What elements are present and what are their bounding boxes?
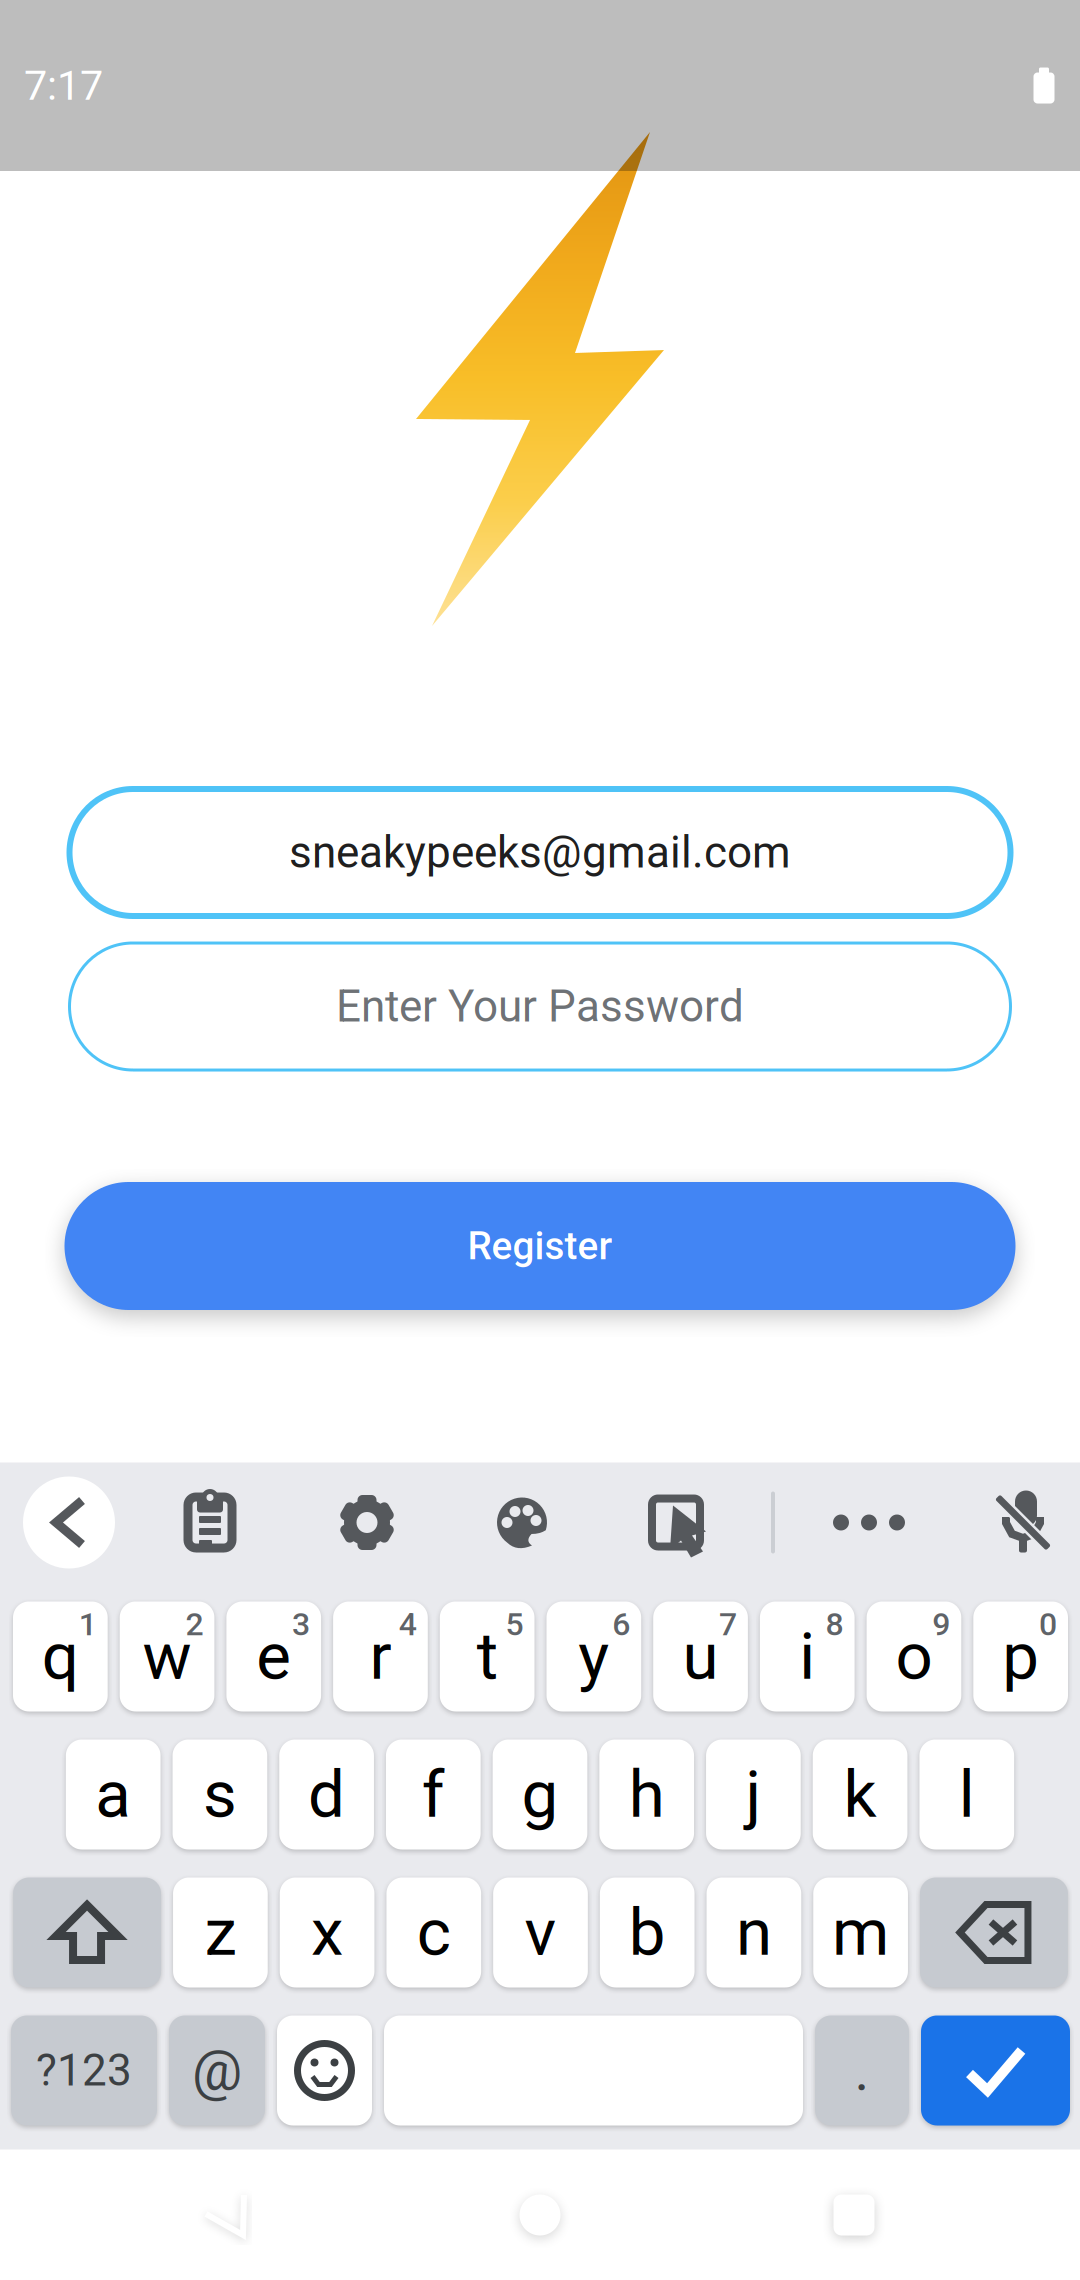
button[interactable]: k — [813, 1739, 907, 1849]
button[interactable]: Theme — [494, 1494, 550, 1550]
staticText: w — [142, 1618, 191, 1695]
button[interactable]: q — [13, 1601, 108, 1711]
button[interactable]: p — [973, 1601, 1068, 1711]
staticText: o — [895, 1618, 932, 1695]
staticText: 3 — [292, 1605, 310, 1643]
button[interactable]: Enter Your Password — [69, 943, 1010, 1070]
button[interactable]: g — [493, 1739, 587, 1849]
button[interactable]: j — [706, 1739, 801, 1849]
button[interactable]: m — [813, 1877, 908, 1987]
button[interactable]: c — [386, 1877, 481, 1987]
button[interactable]: r — [333, 1601, 428, 1711]
button[interactable]: f — [386, 1739, 481, 1849]
staticText: 6 — [612, 1605, 630, 1643]
staticText: Register — [467, 1223, 612, 1269]
button[interactable]: Voice input off — [992, 1491, 1054, 1553]
button[interactable]: w — [120, 1601, 214, 1711]
staticText: l — [959, 1756, 975, 1833]
button[interactable]: o — [867, 1601, 961, 1711]
button[interactable]: l — [919, 1739, 1014, 1849]
button[interactable]: Stickers — [645, 1491, 707, 1553]
staticText: d — [308, 1756, 345, 1833]
staticText: g — [521, 1756, 558, 1833]
button[interactable]: sneakypeeks@gmail.com — [69, 789, 1010, 916]
button[interactable]: b — [600, 1877, 694, 1987]
staticText: p — [1002, 1618, 1039, 1695]
staticText: y — [578, 1618, 609, 1695]
button[interactable]: d — [279, 1739, 374, 1849]
staticText: ?123 — [36, 2045, 132, 2096]
button[interactable]: x — [280, 1877, 374, 1987]
button[interactable]: e — [226, 1601, 321, 1711]
staticText: 1 — [79, 1605, 97, 1643]
staticText: k — [844, 1756, 877, 1833]
staticText: 4 — [399, 1605, 417, 1643]
button[interactable]: . — [815, 2015, 909, 2125]
button[interactable]: i — [760, 1601, 855, 1711]
staticText: m — [832, 1894, 889, 1971]
staticText: 0 — [1039, 1605, 1057, 1643]
staticText: q — [42, 1618, 79, 1695]
staticText: s — [203, 1756, 237, 1833]
button[interactable] — [384, 2015, 803, 2125]
staticText: c — [417, 1894, 451, 1971]
staticText: t — [477, 1618, 498, 1695]
staticText: u — [682, 1618, 718, 1695]
staticText: 9 — [932, 1605, 950, 1643]
button[interactable]: Clipboard — [181, 1491, 239, 1553]
staticText: 2 — [185, 1605, 203, 1643]
button[interactable]: @ — [169, 2015, 265, 2125]
staticText: h — [629, 1756, 665, 1833]
button[interactable]: Settings — [338, 1493, 396, 1551]
button[interactable]: v — [493, 1877, 588, 1987]
staticText: z — [204, 1894, 236, 1971]
staticText: @ — [192, 2038, 242, 2103]
staticText: Enter Your Password — [336, 981, 744, 1032]
button[interactable]: h — [599, 1739, 694, 1849]
staticText: x — [311, 1894, 343, 1971]
button[interactable]: Done — [921, 2015, 1070, 2125]
button[interactable]: t — [440, 1601, 534, 1711]
button[interactable]: Register — [64, 1182, 1015, 1310]
staticText: v — [524, 1894, 556, 1971]
button[interactable]: a — [66, 1739, 160, 1849]
button[interactable]: More options — [838, 1494, 900, 1550]
button[interactable]: Back — [23, 1476, 115, 1568]
staticText: i — [799, 1618, 815, 1695]
button[interactable]: n — [706, 1877, 801, 1987]
staticText: a — [95, 1756, 131, 1833]
button[interactable]: s — [172, 1739, 267, 1849]
staticText: 7 — [719, 1605, 737, 1643]
staticText: n — [736, 1894, 772, 1971]
button[interactable]: Backspace — [920, 1877, 1068, 1987]
staticText: r — [369, 1618, 391, 1695]
staticText: j — [745, 1756, 761, 1833]
button[interactable]: y — [546, 1601, 641, 1711]
staticText: 8 — [826, 1605, 844, 1643]
staticText: . — [854, 2038, 869, 2103]
staticText: e — [256, 1618, 291, 1695]
staticText: 5 — [505, 1605, 523, 1643]
staticText: f — [422, 1756, 445, 1833]
button[interactable]: ?123 — [11, 2015, 157, 2125]
button[interactable]: Emoji — [277, 2015, 372, 2125]
staticText: b — [629, 1894, 666, 1971]
button[interactable]: z — [173, 1877, 268, 1987]
button[interactable]: Shift — [13, 1877, 161, 1987]
staticText: sneakypeeks@gmail.com — [289, 827, 791, 878]
staticText: 7:17 — [24, 61, 103, 110]
button[interactable]: u — [653, 1601, 748, 1711]
